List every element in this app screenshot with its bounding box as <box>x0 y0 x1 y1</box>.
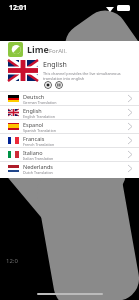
button[interactable]: English <box>0 57 139 91</box>
staticText: Francais <box>23 135 45 142</box>
button[interactable]: Espanol <box>0 120 139 133</box>
staticText: This channel provides the live simultane… <box>43 71 139 81</box>
staticText: English Translation <box>23 114 55 119</box>
staticText: Italiano <box>23 149 43 156</box>
staticText: Nederlands <box>23 163 53 170</box>
staticText: Italian Translation <box>23 156 54 161</box>
staticText: Spanish Translation <box>23 128 56 133</box>
button[interactable]: Deutsch <box>0 92 139 105</box>
button[interactable]: Nederlands <box>0 162 139 175</box>
button[interactable]: Pause <box>55 81 63 89</box>
staticText: Deutsch <box>23 93 45 100</box>
button[interactable]: Stop <box>44 81 52 89</box>
button[interactable]: Italiano <box>0 148 139 161</box>
staticText: 12:01 <box>9 3 27 13</box>
staticText: 12:0 <box>6 257 18 265</box>
staticText: French Translation <box>23 142 55 147</box>
staticText: German Translation <box>23 100 57 105</box>
staticText: English <box>43 60 67 70</box>
staticText: Dutch Translation <box>23 170 53 175</box>
staticText: ForAll. <box>49 47 67 55</box>
staticText: Lime <box>27 43 49 55</box>
button[interactable]: Francais <box>0 134 139 147</box>
staticText: English <box>23 107 42 114</box>
staticText: Espanol <box>23 121 44 128</box>
button[interactable]: English <box>0 106 139 119</box>
